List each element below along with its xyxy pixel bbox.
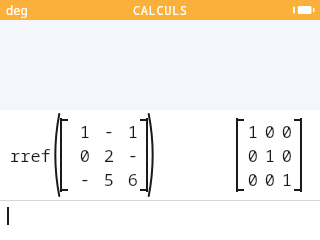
staticText: 0: [247, 168, 258, 191]
staticText: 0: [281, 144, 292, 167]
staticText: 0: [281, 120, 292, 143]
staticText: CALCULS: [133, 2, 188, 18]
staticText: 6: [127, 168, 138, 191]
staticText: 0: [264, 120, 275, 143]
button[interactable]: rref: [0, 110, 320, 200]
button[interactable]: deg: [6, 2, 28, 18]
staticText: -2: [94, 119, 114, 143]
staticText: 1: [247, 120, 258, 143]
button[interactable]: Battery: [293, 4, 315, 16]
staticText: 1: [264, 144, 275, 167]
staticText: 5: [103, 168, 114, 191]
staticText: 0: [247, 144, 258, 167]
staticText: 0: [79, 144, 90, 167]
staticText: 1: [79, 120, 90, 143]
staticText: 1: [281, 168, 292, 191]
staticText: 1: [127, 120, 138, 143]
staticText: rref: [10, 144, 51, 167]
button[interactable]: Expression input: [0, 201, 320, 240]
staticText: 2: [103, 144, 114, 167]
staticText: 0: [264, 168, 275, 191]
staticText: -8: [118, 143, 138, 167]
staticText: -4: [70, 167, 90, 191]
